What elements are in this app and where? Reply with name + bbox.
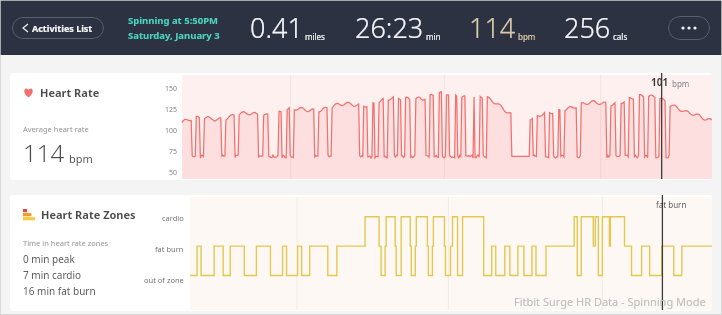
staticText: fat burn [656,199,687,210]
staticText: 0.41 [250,9,303,46]
staticText: 50 [169,168,178,178]
staticText: 16 min fat burn [23,284,96,298]
button[interactable]: Heart Rate [10,73,712,180]
staticText: 7 min cardio [23,268,82,282]
button[interactable]: Heart Rate Zones [10,195,712,311]
staticText: Time in heart rate zones [23,238,109,248]
staticText: Saturday, January 3 [128,29,220,42]
staticText: cals [613,31,628,42]
staticText: Fitbit Surge HR Data - Spinning Mode [514,294,706,309]
staticText: Average heart rate [23,124,89,134]
staticText: bpm [672,78,690,89]
staticText: 100 [165,126,178,136]
staticText: out of zone [144,275,184,285]
staticText: Spinning at 5:50PM [128,14,219,27]
staticText: 101 [651,75,669,89]
staticText: 114 [469,9,516,46]
staticText: 0 min peak [23,252,75,266]
staticText: cardio [162,213,184,223]
staticText: 75 [169,147,178,157]
staticText: miles [305,31,325,42]
staticText: 114 [23,136,65,169]
staticText: Heart Rate [40,85,100,100]
staticText: 256 [564,9,611,46]
staticText: 125 [165,105,178,115]
staticText: 26:23 [355,9,424,46]
staticText: min [426,31,441,42]
staticText: bpm [69,151,93,166]
staticText: fat burn [155,244,184,254]
staticText: Activities List [32,22,93,34]
button[interactable]: Activities List [12,17,104,39]
button[interactable]: More options [668,16,710,40]
staticText: 150 [165,84,178,94]
staticText: bpm [518,31,536,42]
staticText: Heart Rate Zones [41,207,136,222]
